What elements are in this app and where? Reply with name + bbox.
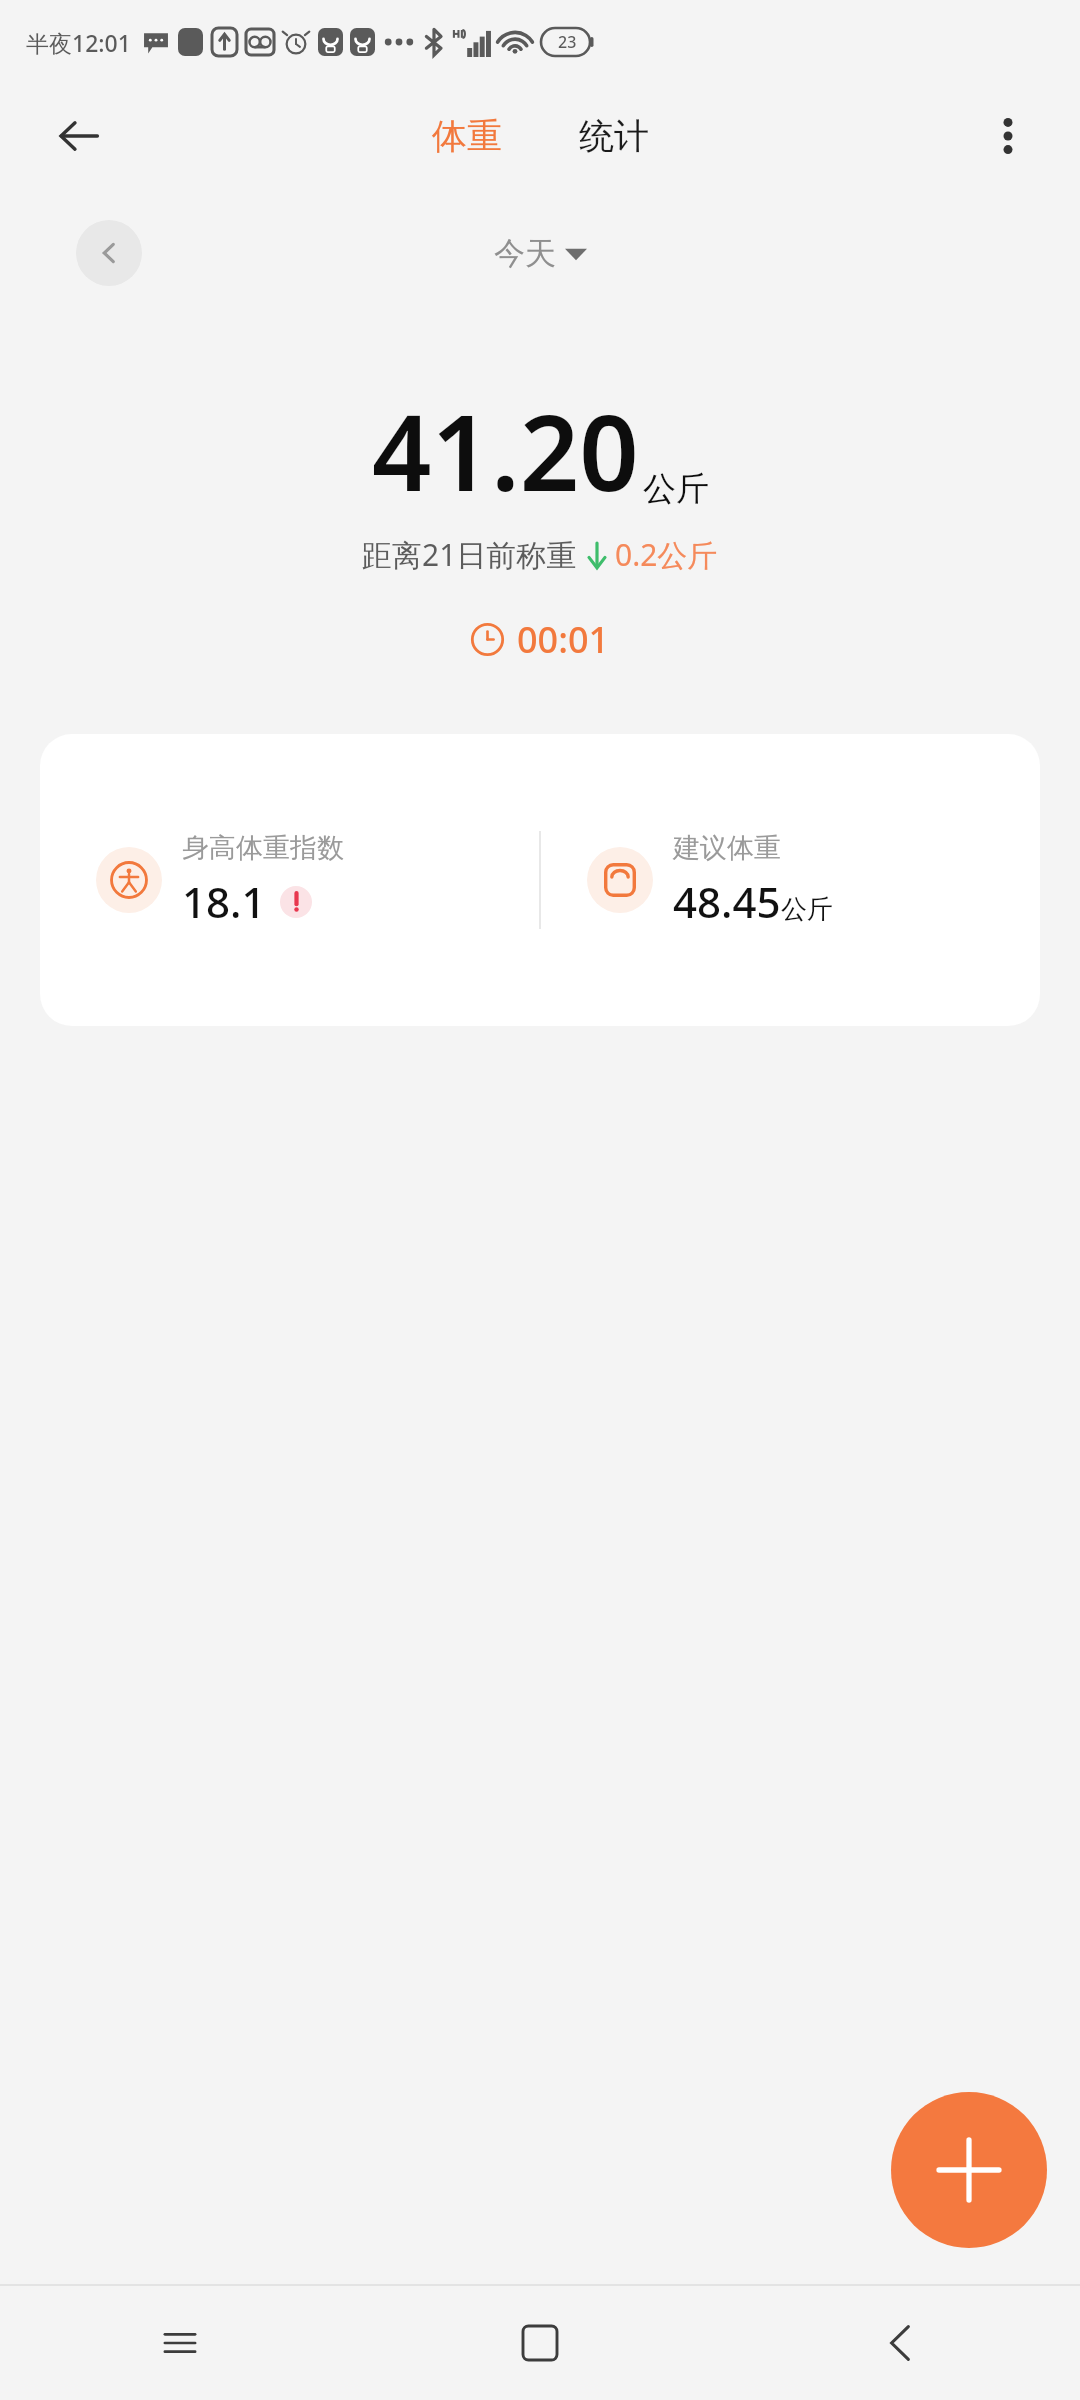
button[interactable]: Back	[50, 107, 108, 165]
staticText: 18.1	[182, 873, 266, 930]
staticText: 41.20	[372, 380, 639, 522]
staticText: 统计	[579, 114, 649, 158]
staticText: 今天	[494, 234, 556, 273]
staticText: 23	[558, 31, 577, 53]
staticText: 半夜12:01	[26, 27, 131, 58]
button[interactable]: More options	[980, 108, 1036, 164]
button[interactable]: 今天	[480, 224, 601, 283]
staticText: 48.45	[673, 873, 781, 930]
staticText: 00:01	[517, 615, 610, 664]
staticText: 0.2公斤	[615, 534, 718, 575]
button[interactable]: Add weight record	[891, 2092, 1047, 2248]
staticText: 身高体重指数	[182, 831, 344, 865]
button[interactable]: 体重	[422, 106, 512, 166]
button[interactable]: 统计	[569, 106, 659, 166]
button[interactable]: Back	[720, 2286, 1080, 2400]
button[interactable]: Home	[360, 2286, 720, 2400]
staticText: 公斤	[643, 468, 709, 510]
staticText: 公斤	[781, 893, 833, 926]
button[interactable]: 建议体重	[541, 734, 1040, 1026]
button[interactable]: Recent apps	[0, 2286, 360, 2400]
staticText: 体重	[432, 114, 502, 158]
button[interactable]: Previous day	[76, 220, 142, 286]
staticText: 建议体重	[673, 831, 781, 865]
staticText: 距离21日前称重	[362, 534, 577, 575]
button[interactable]: 身高体重指数	[40, 734, 539, 1026]
